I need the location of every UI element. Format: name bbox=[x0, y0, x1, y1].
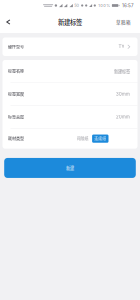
button[interactable]: 间隙纸 bbox=[75, 135, 90, 143]
staticText: 20mm bbox=[116, 114, 130, 120]
staticText: 5G bbox=[74, 3, 79, 8]
staticText: 100% bbox=[98, 3, 110, 8]
staticText: 30mm bbox=[116, 92, 130, 97]
staticText: TY bbox=[118, 44, 124, 49]
button[interactable]: 硬件型号 bbox=[0, 37, 140, 56]
staticText: 草稿箱 bbox=[116, 19, 131, 25]
staticText: 耗材类型 bbox=[8, 136, 24, 142]
staticText: 标签高度 bbox=[8, 114, 24, 120]
staticText: 16:57 bbox=[122, 3, 134, 8]
button[interactable]: 草稿箱 bbox=[116, 11, 140, 33]
button[interactable]: 连续纸 bbox=[92, 135, 108, 143]
staticText: 标签宽度 bbox=[8, 91, 24, 97]
staticText: 硬件型号 bbox=[8, 44, 24, 50]
staticText: 间隙纸 bbox=[76, 136, 88, 142]
button[interactable]: Back bbox=[0, 11, 18, 33]
staticText: 新建标签 bbox=[114, 68, 130, 74]
staticText: 连续纸 bbox=[94, 136, 106, 142]
staticText: 新建 bbox=[66, 165, 74, 171]
staticText: 标签名称 bbox=[8, 68, 24, 74]
button[interactable]: 新建 bbox=[0, 158, 140, 178]
staticText: 新建标签 bbox=[58, 17, 82, 27]
